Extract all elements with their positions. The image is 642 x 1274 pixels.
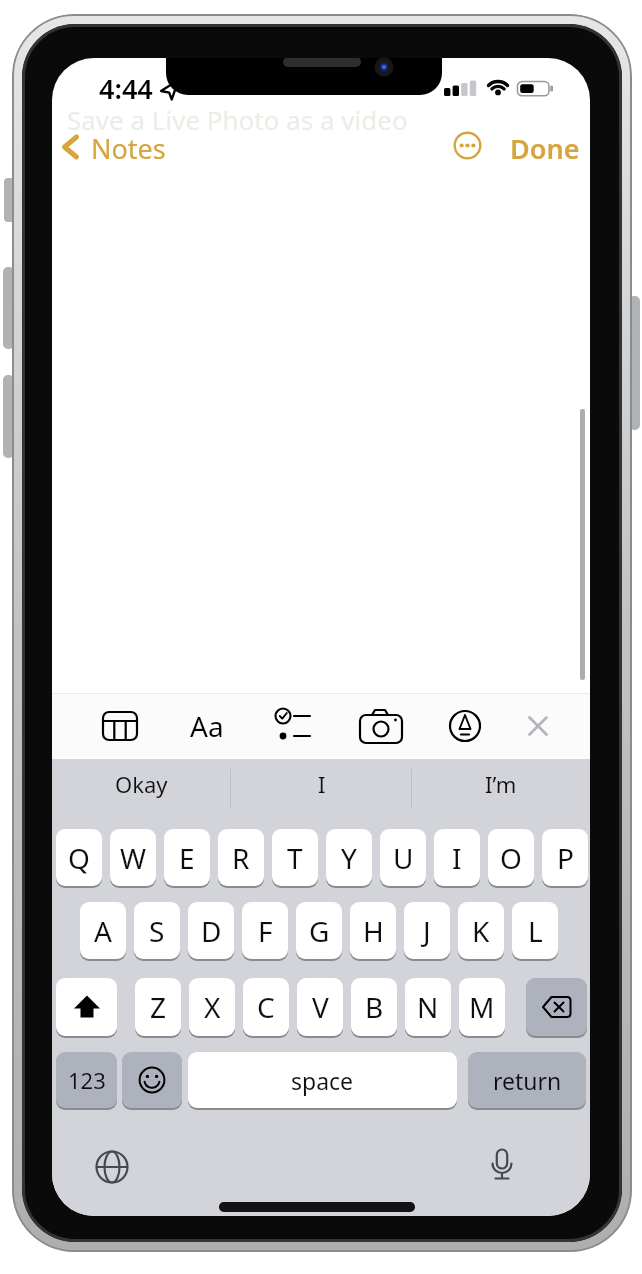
button[interactable]: U bbox=[380, 829, 426, 886]
staticText: 4:44 bbox=[99, 70, 153, 107]
staticText: Q bbox=[68, 839, 90, 877]
button[interactable]: W bbox=[110, 829, 156, 886]
button[interactable]: X bbox=[189, 978, 235, 1036]
staticText: B bbox=[365, 988, 384, 1026]
staticText: D bbox=[201, 912, 222, 950]
button[interactable]: Okay bbox=[52, 759, 231, 809]
staticText: U bbox=[393, 839, 414, 877]
button[interactable]: Aa bbox=[185, 706, 229, 746]
button[interactable]: E bbox=[164, 829, 210, 886]
button[interactable]: Q bbox=[56, 829, 102, 886]
button[interactable]: F bbox=[242, 902, 288, 959]
staticText: G bbox=[309, 912, 330, 950]
staticText: R bbox=[232, 839, 250, 877]
staticText: Aa bbox=[190, 707, 224, 745]
button[interactable]: Done bbox=[508, 130, 590, 164]
button[interactable]: M bbox=[459, 978, 505, 1036]
button[interactable]: Notes bbox=[56, 130, 168, 164]
button[interactable]: 123 bbox=[56, 1052, 117, 1108]
button[interactable]: D bbox=[188, 902, 234, 959]
button[interactable]: I’m bbox=[412, 759, 590, 809]
button[interactable] bbox=[526, 978, 587, 1036]
staticText: Okay bbox=[115, 769, 168, 799]
button[interactable]: space bbox=[188, 1052, 457, 1108]
button[interactable]: G bbox=[296, 902, 342, 959]
staticText: Z bbox=[150, 988, 167, 1026]
staticText: I bbox=[452, 839, 462, 877]
staticText: Save a Live Photo as a video bbox=[67, 102, 408, 137]
button[interactable]: V bbox=[297, 978, 343, 1036]
staticText: Notes bbox=[91, 130, 166, 164]
staticText: W bbox=[120, 839, 147, 877]
button[interactable]: Y bbox=[326, 829, 372, 886]
staticText: return bbox=[493, 1065, 562, 1096]
button[interactable]: P bbox=[542, 829, 588, 886]
staticText: O bbox=[500, 839, 522, 877]
button[interactable]: I bbox=[232, 759, 411, 809]
staticText: N bbox=[417, 988, 439, 1026]
button[interactable]: H bbox=[350, 902, 396, 959]
staticText: Done bbox=[510, 130, 580, 164]
button[interactable] bbox=[482, 1147, 522, 1187]
staticText: J bbox=[423, 912, 431, 950]
staticText: M bbox=[469, 988, 495, 1026]
button[interactable] bbox=[358, 706, 404, 746]
staticText: T bbox=[287, 839, 303, 877]
staticText: Y bbox=[341, 839, 357, 877]
button[interactable] bbox=[527, 715, 549, 737]
button[interactable] bbox=[448, 709, 482, 743]
button[interactable]: R bbox=[218, 829, 264, 886]
button[interactable]: I bbox=[434, 829, 480, 886]
button[interactable]: K bbox=[458, 902, 504, 959]
staticText: C bbox=[257, 988, 275, 1026]
staticText: S bbox=[149, 912, 165, 950]
staticText: I bbox=[318, 769, 326, 799]
button[interactable] bbox=[56, 978, 117, 1036]
button[interactable]: B bbox=[351, 978, 397, 1036]
staticText: X bbox=[204, 988, 221, 1026]
button[interactable] bbox=[122, 1052, 182, 1108]
button[interactable] bbox=[92, 1147, 132, 1187]
button[interactable]: N bbox=[405, 978, 451, 1036]
staticText: F bbox=[258, 912, 273, 950]
button[interactable]: A bbox=[80, 902, 126, 959]
staticText: I’m bbox=[485, 769, 517, 799]
button[interactable]: Z bbox=[135, 978, 181, 1036]
staticText: space bbox=[291, 1065, 354, 1096]
button[interactable]: T bbox=[272, 829, 318, 886]
button[interactable] bbox=[453, 131, 482, 160]
button[interactable]: L bbox=[512, 902, 558, 959]
staticText: K bbox=[472, 912, 490, 950]
button[interactable] bbox=[272, 706, 316, 746]
button[interactable]: J bbox=[404, 902, 450, 959]
staticText: V bbox=[312, 988, 329, 1026]
button[interactable]: O bbox=[488, 829, 534, 886]
staticText: A bbox=[94, 912, 112, 950]
button[interactable]: S bbox=[134, 902, 180, 959]
staticText: 123 bbox=[68, 1065, 106, 1095]
button[interactable] bbox=[98, 706, 142, 746]
button[interactable]: C bbox=[243, 978, 289, 1036]
staticText: P bbox=[557, 839, 574, 877]
staticText: H bbox=[363, 912, 384, 950]
staticText: E bbox=[179, 839, 195, 877]
staticText: L bbox=[528, 912, 543, 950]
button[interactable]: return bbox=[468, 1052, 586, 1108]
